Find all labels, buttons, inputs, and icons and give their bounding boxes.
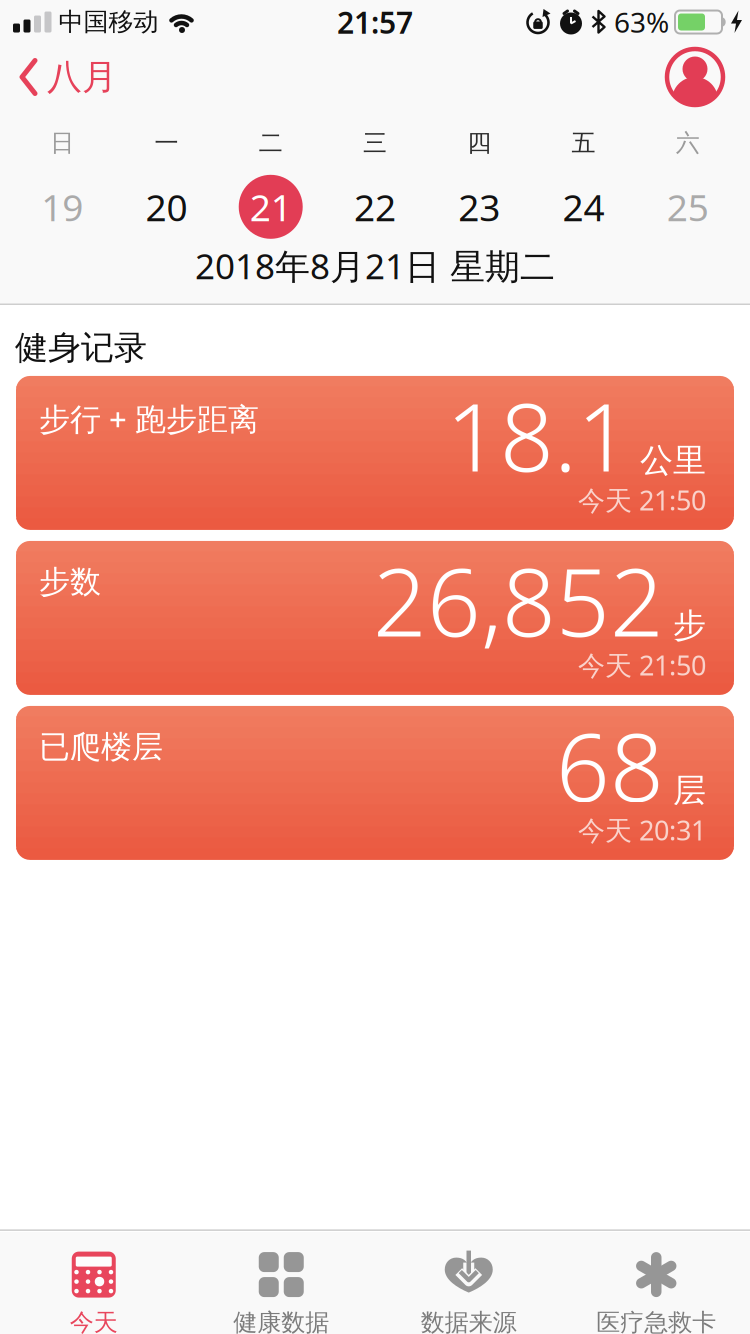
button[interactable]: 步行 + 跑步距离: [16, 376, 734, 530]
staticText: 健身记录: [15, 329, 147, 367]
staticText: 步行 + 跑步距离: [39, 399, 259, 438]
staticText: 21: [250, 184, 292, 230]
staticText: 四: [467, 129, 491, 157]
staticText: 六: [676, 129, 700, 157]
button[interactable]: 医疗急救卡: [562, 1251, 750, 1334]
button[interactable]: 数据来源: [375, 1251, 562, 1334]
button[interactable]: 个人资料: [665, 47, 750, 107]
button[interactable]: 步数: [16, 541, 734, 695]
button[interactable]: 八月: [0, 57, 117, 97]
staticText: 21:57: [337, 3, 413, 41]
button[interactable]: 健康数据: [187, 1251, 375, 1334]
staticText: 日: [50, 129, 74, 157]
staticText: 22: [354, 184, 396, 230]
staticText: 19: [41, 184, 83, 230]
staticText: 医疗急救卡: [596, 1309, 716, 1334]
staticText: 63%: [614, 4, 669, 40]
staticText: 数据来源: [421, 1309, 517, 1334]
button[interactable]: 20: [114, 174, 219, 240]
staticText: 公里: [640, 441, 706, 479]
staticText: 一: [154, 129, 178, 157]
staticText: 今天 21:50: [578, 648, 706, 682]
staticText: 20: [145, 184, 187, 230]
staticText: 二: [259, 129, 283, 157]
button[interactable]: 25: [636, 174, 740, 240]
staticText: 2018年8月21日 星期二: [195, 244, 555, 288]
staticText: 25: [667, 184, 709, 230]
button[interactable]: 22: [323, 174, 427, 240]
staticText: 三: [363, 129, 387, 157]
staticText: 18.1: [446, 376, 631, 494]
button[interactable]: 23: [427, 174, 531, 240]
staticText: 步数: [39, 564, 101, 600]
staticText: 中国移动: [58, 7, 158, 36]
staticText: 26,852: [373, 541, 664, 659]
staticText: 健康数据: [233, 1309, 329, 1334]
staticText: 今天: [70, 1309, 118, 1334]
staticText: 步: [673, 606, 706, 644]
button[interactable]: 21: [219, 174, 323, 240]
button[interactable]: 24: [531, 174, 636, 240]
staticText: 23: [458, 184, 500, 230]
button[interactable]: 今天: [0, 1251, 187, 1334]
button[interactable]: 19: [10, 174, 114, 240]
staticText: 今天 21:50: [578, 483, 706, 517]
staticText: 已爬楼层: [39, 729, 163, 765]
staticText: 层: [673, 771, 706, 809]
staticText: 68: [556, 706, 664, 824]
staticText: 八月: [47, 57, 117, 97]
staticText: 24: [563, 184, 605, 230]
staticText: 五: [572, 129, 596, 157]
button[interactable]: 已爬楼层: [16, 706, 734, 860]
staticText: 今天 20:31: [578, 813, 706, 847]
